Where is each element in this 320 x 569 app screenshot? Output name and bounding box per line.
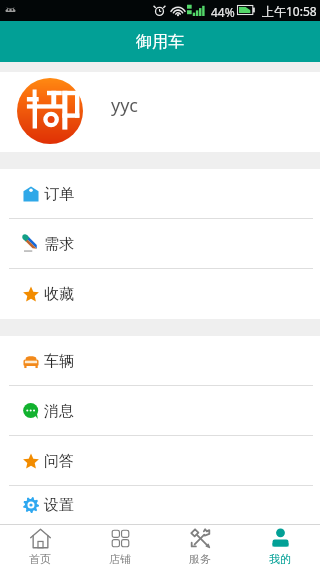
- staticText: 需求: [44, 235, 74, 254]
- staticText: 订单: [44, 185, 74, 204]
- button[interactable]: Services: [160, 525, 240, 569]
- staticText: 我的: [269, 552, 291, 566]
- button[interactable]: 车辆: [0, 336, 320, 386]
- button[interactable]: 设置: [0, 486, 320, 524]
- other: Services: [190, 528, 211, 549]
- button[interactable]: 消息: [0, 386, 320, 436]
- staticText: 车辆: [44, 352, 74, 371]
- staticText: 御用车: [136, 32, 184, 52]
- button[interactable]: Home: [0, 525, 80, 569]
- staticText: 设置: [44, 496, 74, 515]
- other: Shops: [110, 528, 131, 549]
- staticText: 问答: [44, 452, 74, 471]
- staticText: 服务: [189, 552, 211, 566]
- button[interactable]: 订单: [0, 169, 320, 219]
- staticText: yyc: [111, 93, 138, 118]
- button[interactable]: 问答: [0, 436, 320, 486]
- other: Profile: [270, 528, 291, 549]
- button[interactable]: yyc: [0, 72, 320, 152]
- staticText: 上午10:58: [262, 3, 317, 19]
- staticText: 收藏: [44, 285, 74, 304]
- staticText: 消息: [44, 402, 74, 421]
- button[interactable]: Shops: [80, 525, 160, 569]
- staticText: 44%: [211, 4, 235, 20]
- button[interactable]: 收藏: [0, 269, 320, 319]
- button[interactable]: Profile: [240, 525, 320, 569]
- staticText: 首页: [29, 552, 51, 566]
- button[interactable]: 需求: [0, 219, 320, 269]
- other: Home: [30, 528, 51, 549]
- staticText: 店铺: [109, 552, 131, 566]
